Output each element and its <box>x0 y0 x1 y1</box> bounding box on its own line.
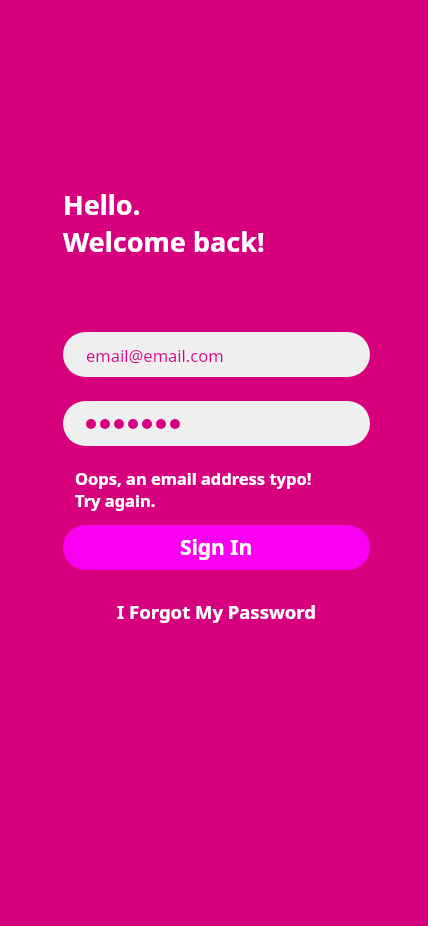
staticText: Hello. <box>63 186 141 223</box>
staticText: Sign In <box>180 533 253 562</box>
staticText: Oops, an email address typo! <box>75 467 312 489</box>
staticText: Welcome back! <box>63 223 265 260</box>
button[interactable]: Sign In <box>63 525 370 570</box>
button[interactable]: Password <box>63 401 370 446</box>
button[interactable]: email@email.com <box>63 332 370 377</box>
staticText: email@email.com <box>86 344 224 366</box>
staticText: I Forgot My Password <box>117 599 316 624</box>
staticText: Try again. <box>75 489 156 511</box>
button[interactable]: I Forgot My Password <box>63 595 370 628</box>
